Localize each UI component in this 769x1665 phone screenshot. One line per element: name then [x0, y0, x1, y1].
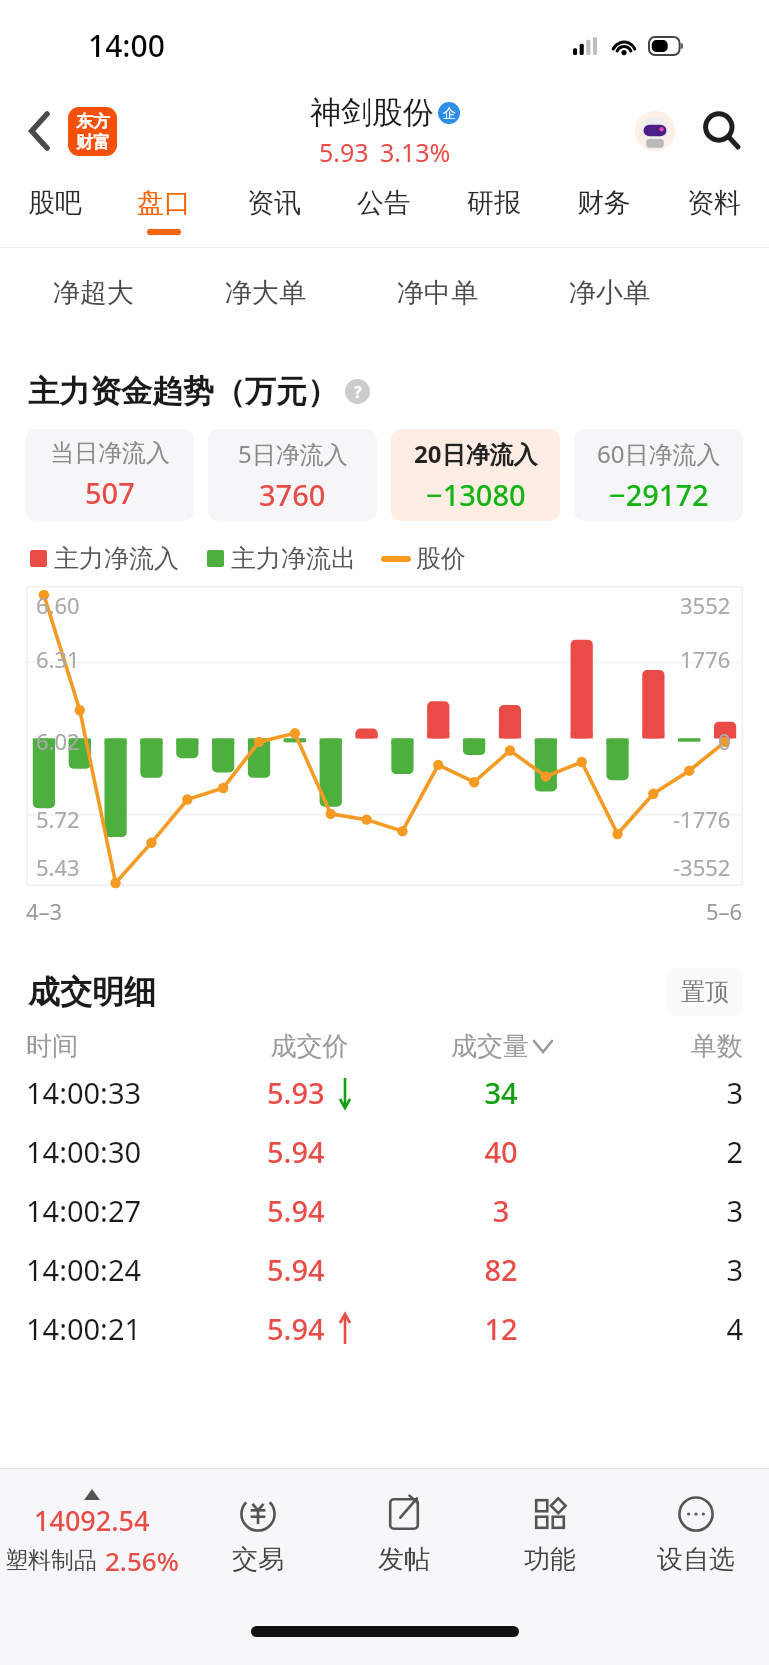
button[interactable]: 交易 [184, 1469, 331, 1597]
staticText: 成交明细 [28, 972, 156, 1012]
button[interactable]: 资讯 [219, 172, 329, 248]
staticText: ? [354, 381, 362, 403]
staticText: 14:00:27 [26, 1191, 218, 1230]
staticText: 5.93 [319, 135, 369, 169]
staticText: 3760 [259, 475, 326, 514]
staticText: 20日净流入 [414, 437, 538, 470]
staticText: 神剑股份 [310, 93, 434, 132]
staticText: 6.60 [36, 590, 80, 620]
staticText: 3552 [680, 590, 731, 620]
button[interactable]: Back [14, 105, 66, 157]
staticText: 功能 [524, 1543, 576, 1576]
button[interactable]: 净超大 [8, 248, 179, 338]
staticText: 6.31 [36, 644, 80, 674]
staticText: 置顶 [681, 977, 729, 1007]
button[interactable]: 5日净流入 [208, 429, 377, 521]
button[interactable]: 净小单 [523, 248, 695, 338]
staticText: 14:00 [88, 25, 165, 66]
staticText: 6.02 [36, 726, 80, 756]
staticText: 60日净流入 [597, 437, 721, 470]
staticText: 5日净流入 [238, 437, 348, 470]
button[interactable]: 资料 [659, 172, 769, 248]
button[interactable]: 股吧 [0, 172, 109, 248]
staticText: 40 [401, 1132, 601, 1171]
button[interactable]: 功能 [477, 1469, 623, 1597]
staticText: 时间 [26, 1030, 218, 1063]
staticText: -1776 [673, 804, 731, 834]
staticText: 14:00:24 [26, 1250, 218, 1289]
staticText: −29172 [609, 475, 709, 514]
staticText: 4 [601, 1309, 743, 1348]
staticText: 财务 [577, 186, 631, 220]
button[interactable]: 14092.54 [0, 1489, 184, 1578]
staticText: 3 [601, 1191, 743, 1230]
button[interactable]: 14:00:33 [26, 1063, 743, 1122]
staticText: 交易 [232, 1543, 284, 1576]
staticText: 14:00:30 [26, 1132, 218, 1171]
staticText: 净超大 [53, 276, 134, 310]
button[interactable]: AI assistant [625, 101, 685, 161]
staticText: 1776 [680, 644, 731, 674]
staticText: 5–6 [706, 896, 743, 926]
button[interactable]: 主力资金趋势（万元） [28, 372, 769, 411]
staticText: 14:00:33 [26, 1073, 218, 1112]
staticText: 2.56% [105, 1543, 179, 1578]
staticText: 成交量 [451, 1030, 529, 1063]
staticText: 发帖 [378, 1543, 430, 1576]
staticText: 成交价 [218, 1030, 401, 1063]
button[interactable]: 20日净流入 [391, 429, 560, 521]
staticText: 5.94 [267, 1191, 325, 1230]
button[interactable]: 14:00:27 [26, 1181, 743, 1240]
button[interactable]: 盘口 [109, 172, 219, 248]
staticText: 5.94 [267, 1132, 325, 1171]
staticText: -3552 [673, 852, 731, 882]
staticText: 研报 [467, 186, 521, 220]
staticText: −13080 [426, 475, 526, 514]
staticText: 14:00:21 [26, 1309, 218, 1348]
staticText: 企 [443, 105, 456, 121]
staticText: 3 [401, 1191, 601, 1230]
staticText: 14092.54 [34, 1502, 150, 1539]
staticText: 82 [401, 1250, 601, 1289]
staticText: 主力净流入 [54, 543, 179, 574]
button[interactable]: East Money [68, 107, 117, 156]
staticText: 5.93 [267, 1073, 325, 1112]
staticText: 5.43 [36, 852, 80, 882]
staticText: 净中单 [397, 276, 478, 310]
button[interactable]: 设自选 [623, 1469, 769, 1597]
button[interactable]: 14:00:21 [26, 1299, 743, 1358]
button[interactable]: 财务 [549, 172, 659, 248]
button[interactable]: 60日净流入 [574, 429, 743, 521]
button[interactable]: Search [693, 102, 751, 160]
button[interactable]: 置顶 [667, 968, 743, 1016]
staticText: 主力净流出 [231, 543, 356, 574]
staticText: 4–3 [26, 896, 63, 926]
staticText: 12 [401, 1309, 601, 1348]
staticText: 盘口 [137, 186, 191, 220]
staticText: 设自选 [657, 1543, 735, 1576]
button[interactable]: 当日净流入 [26, 429, 194, 521]
staticText: 公告 [357, 186, 411, 220]
staticText: 3 [601, 1073, 743, 1112]
button[interactable]: 发帖 [331, 1469, 477, 1597]
staticText: 34 [401, 1073, 601, 1112]
staticText: 3.13% [380, 135, 451, 169]
button[interactable]: 净中单 [351, 248, 523, 338]
staticText: 塑料制品 [5, 1546, 97, 1575]
staticText: 0 [718, 726, 731, 756]
staticText: 资讯 [247, 186, 301, 220]
staticText: 3 [601, 1250, 743, 1289]
button[interactable]: 研报 [439, 172, 549, 248]
staticText: 5.94 [267, 1309, 325, 1348]
staticText: 股吧 [28, 186, 82, 220]
button[interactable]: 净大单 [179, 248, 351, 338]
staticText: 净大单 [225, 276, 306, 310]
button[interactable]: 14:00:30 [26, 1122, 743, 1181]
staticText: 5.72 [36, 804, 80, 834]
staticText: 2 [601, 1132, 743, 1171]
button[interactable]: 14:00:24 [26, 1240, 743, 1299]
staticText: 资料 [687, 186, 741, 220]
staticText: 净小单 [569, 276, 650, 310]
button[interactable]: 公告 [329, 172, 439, 248]
staticText: 单数 [601, 1030, 743, 1063]
